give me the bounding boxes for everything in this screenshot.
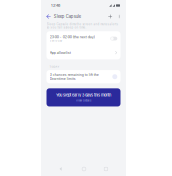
staticText: Sleep Capsule dims the screen and mutes … bbox=[46, 22, 117, 29]
staticText: You slept early 3 days this month bbox=[56, 93, 111, 97]
button[interactable]: Add bbox=[106, 11, 115, 21]
staticText: 23:00 - 02:00 (the next day) bbox=[50, 35, 95, 39]
staticText: 12:48 bbox=[51, 3, 60, 8]
button[interactable]: Recents bbox=[104, 167, 108, 171]
button[interactable]: More options bbox=[115, 11, 124, 21]
staticText: View details bbox=[76, 99, 91, 102]
button[interactable]: You slept early 3 days this month bbox=[41, 83, 126, 106]
button[interactable]: Back bbox=[59, 167, 64, 171]
button[interactable]: App allowlist bbox=[46, 46, 120, 59]
staticText: Every day bbox=[50, 39, 62, 42]
staticText: 3 chances remaining to lift the Downtime… bbox=[50, 73, 99, 81]
button[interactable]: Home bbox=[82, 167, 86, 171]
staticText: Sleep Capsule bbox=[54, 14, 81, 19]
staticText: App allowlist bbox=[50, 50, 71, 55]
staticText: TODAY bbox=[49, 65, 59, 68]
button[interactable]: Back bbox=[43, 11, 54, 22]
